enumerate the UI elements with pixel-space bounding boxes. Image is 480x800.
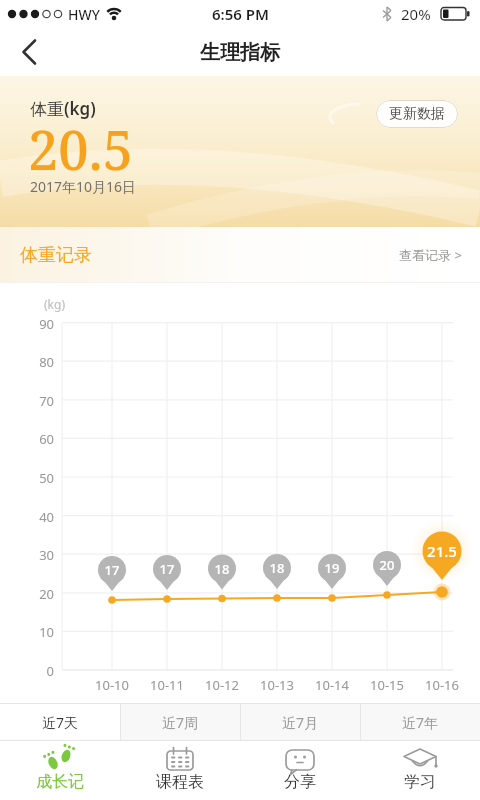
button[interactable]: 近7年	[361, 704, 480, 740]
staticText: 10-12	[195, 676, 249, 694]
staticText: 6:56 PM	[212, 4, 269, 24]
staticText: 18	[202, 560, 242, 578]
staticText: 20.5	[28, 112, 134, 186]
staticText: 40	[28, 508, 54, 526]
staticText: 成长记	[36, 772, 84, 792]
button[interactable]: 分享	[240, 741, 360, 800]
staticText: 学习	[404, 772, 436, 792]
staticText: 0	[28, 662, 54, 680]
staticText: >	[451, 246, 462, 264]
button[interactable]: 更新数据	[376, 100, 458, 128]
staticText: 19	[312, 559, 352, 577]
staticText: 分享	[284, 772, 316, 792]
staticText: 20	[367, 556, 407, 574]
button[interactable]: 成长记	[0, 741, 120, 800]
staticText: 更新数据	[389, 105, 445, 123]
button[interactable]: 近7天	[0, 704, 120, 740]
staticText: 近7年	[402, 713, 439, 732]
staticText: 18	[257, 559, 297, 577]
staticText: 90	[28, 315, 54, 333]
staticText: 10-15	[360, 676, 414, 694]
staticText: 21.5	[418, 541, 466, 561]
staticText: 10-13	[250, 676, 304, 694]
staticText: 体重记录	[20, 244, 92, 267]
button[interactable]: 近7周	[121, 704, 240, 740]
staticText: 10	[28, 623, 54, 641]
staticText: 体重(kg)	[30, 97, 96, 120]
staticText: 10-14	[305, 676, 359, 694]
staticText: 近7月	[282, 713, 319, 732]
staticText: 课程表	[156, 772, 204, 792]
staticText: 生理指标	[200, 40, 280, 65]
staticText: 17	[92, 561, 132, 579]
staticText: 50	[28, 469, 54, 487]
button[interactable]: 学习	[360, 741, 480, 800]
staticText: 2017年10月16日	[30, 177, 137, 196]
staticText: 60	[28, 430, 54, 448]
staticText: 查看记录	[399, 247, 451, 263]
button[interactable]: 课程表	[120, 741, 240, 800]
staticText: 20%	[401, 4, 431, 24]
staticText: 10-10	[85, 676, 139, 694]
staticText: HWY	[68, 5, 100, 24]
staticText: 20	[28, 585, 54, 603]
staticText: 10-11	[140, 676, 194, 694]
staticText: 10-16	[415, 676, 469, 694]
staticText: 70	[28, 392, 54, 410]
button[interactable]: 近7月	[241, 704, 360, 740]
staticText: 30	[28, 546, 54, 564]
button[interactable]: 查看记录	[399, 246, 462, 264]
staticText: 80	[28, 353, 54, 371]
staticText: 近7周	[162, 713, 199, 732]
staticText: (kg)	[44, 296, 65, 312]
staticText: 近7天	[42, 713, 79, 732]
button[interactable]	[0, 28, 48, 76]
staticText: 17	[147, 560, 187, 578]
